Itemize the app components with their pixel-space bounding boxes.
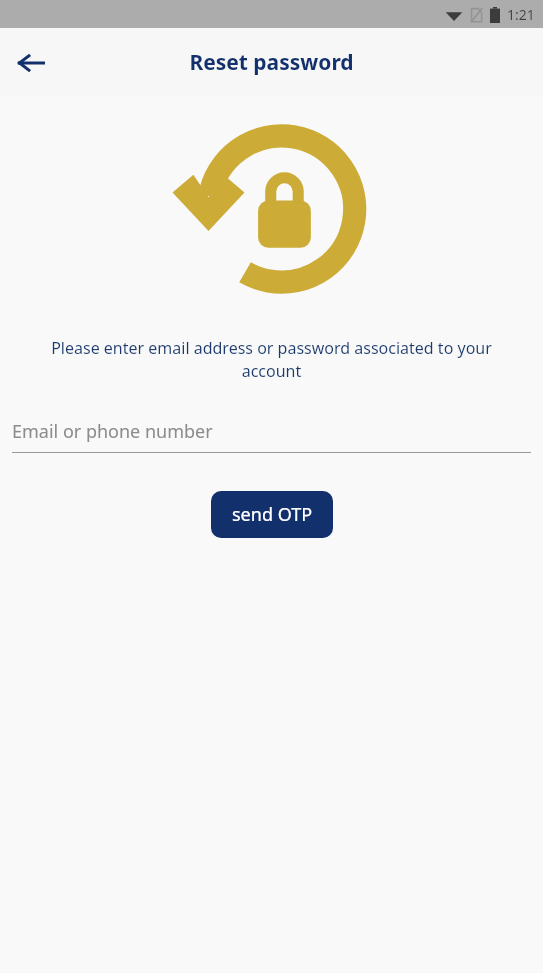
staticText: Reset password xyxy=(189,48,354,77)
button[interactable]: Email or phone number xyxy=(12,410,531,453)
staticText: Please enter email address or password a… xyxy=(20,337,523,382)
button[interactable]: send OTP xyxy=(211,491,333,538)
staticText: send OTP xyxy=(232,502,313,527)
staticText: 1:21 xyxy=(507,5,535,24)
staticText: Email or phone number xyxy=(12,419,213,444)
button[interactable]: Back xyxy=(8,40,54,86)
